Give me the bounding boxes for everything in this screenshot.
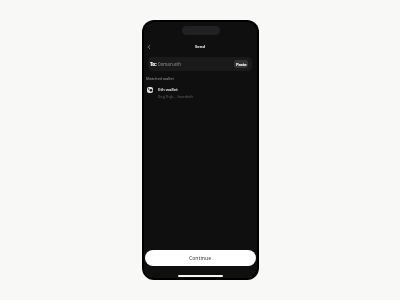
button[interactable]: Back — [144, 42, 153, 51]
other: Wallet icon — [147, 87, 153, 93]
staticText: Send — [195, 44, 206, 50]
staticText: Paste — [236, 62, 247, 67]
button[interactable]: Wallet icon — [144, 84, 257, 98]
staticText: To: — [150, 61, 157, 67]
button[interactable]: Paste — [234, 60, 248, 68]
button[interactable]: To: — [148, 57, 252, 71]
staticText: Continue — [189, 255, 212, 262]
staticText: 0xman.eth — [158, 61, 182, 67]
button[interactable]: Continue — [145, 250, 256, 266]
staticText: Eth wallet — [158, 86, 178, 92]
staticText: 0xg1hjk....hvedsth — [158, 94, 193, 100]
staticText: Matched wallet — [146, 76, 174, 81]
